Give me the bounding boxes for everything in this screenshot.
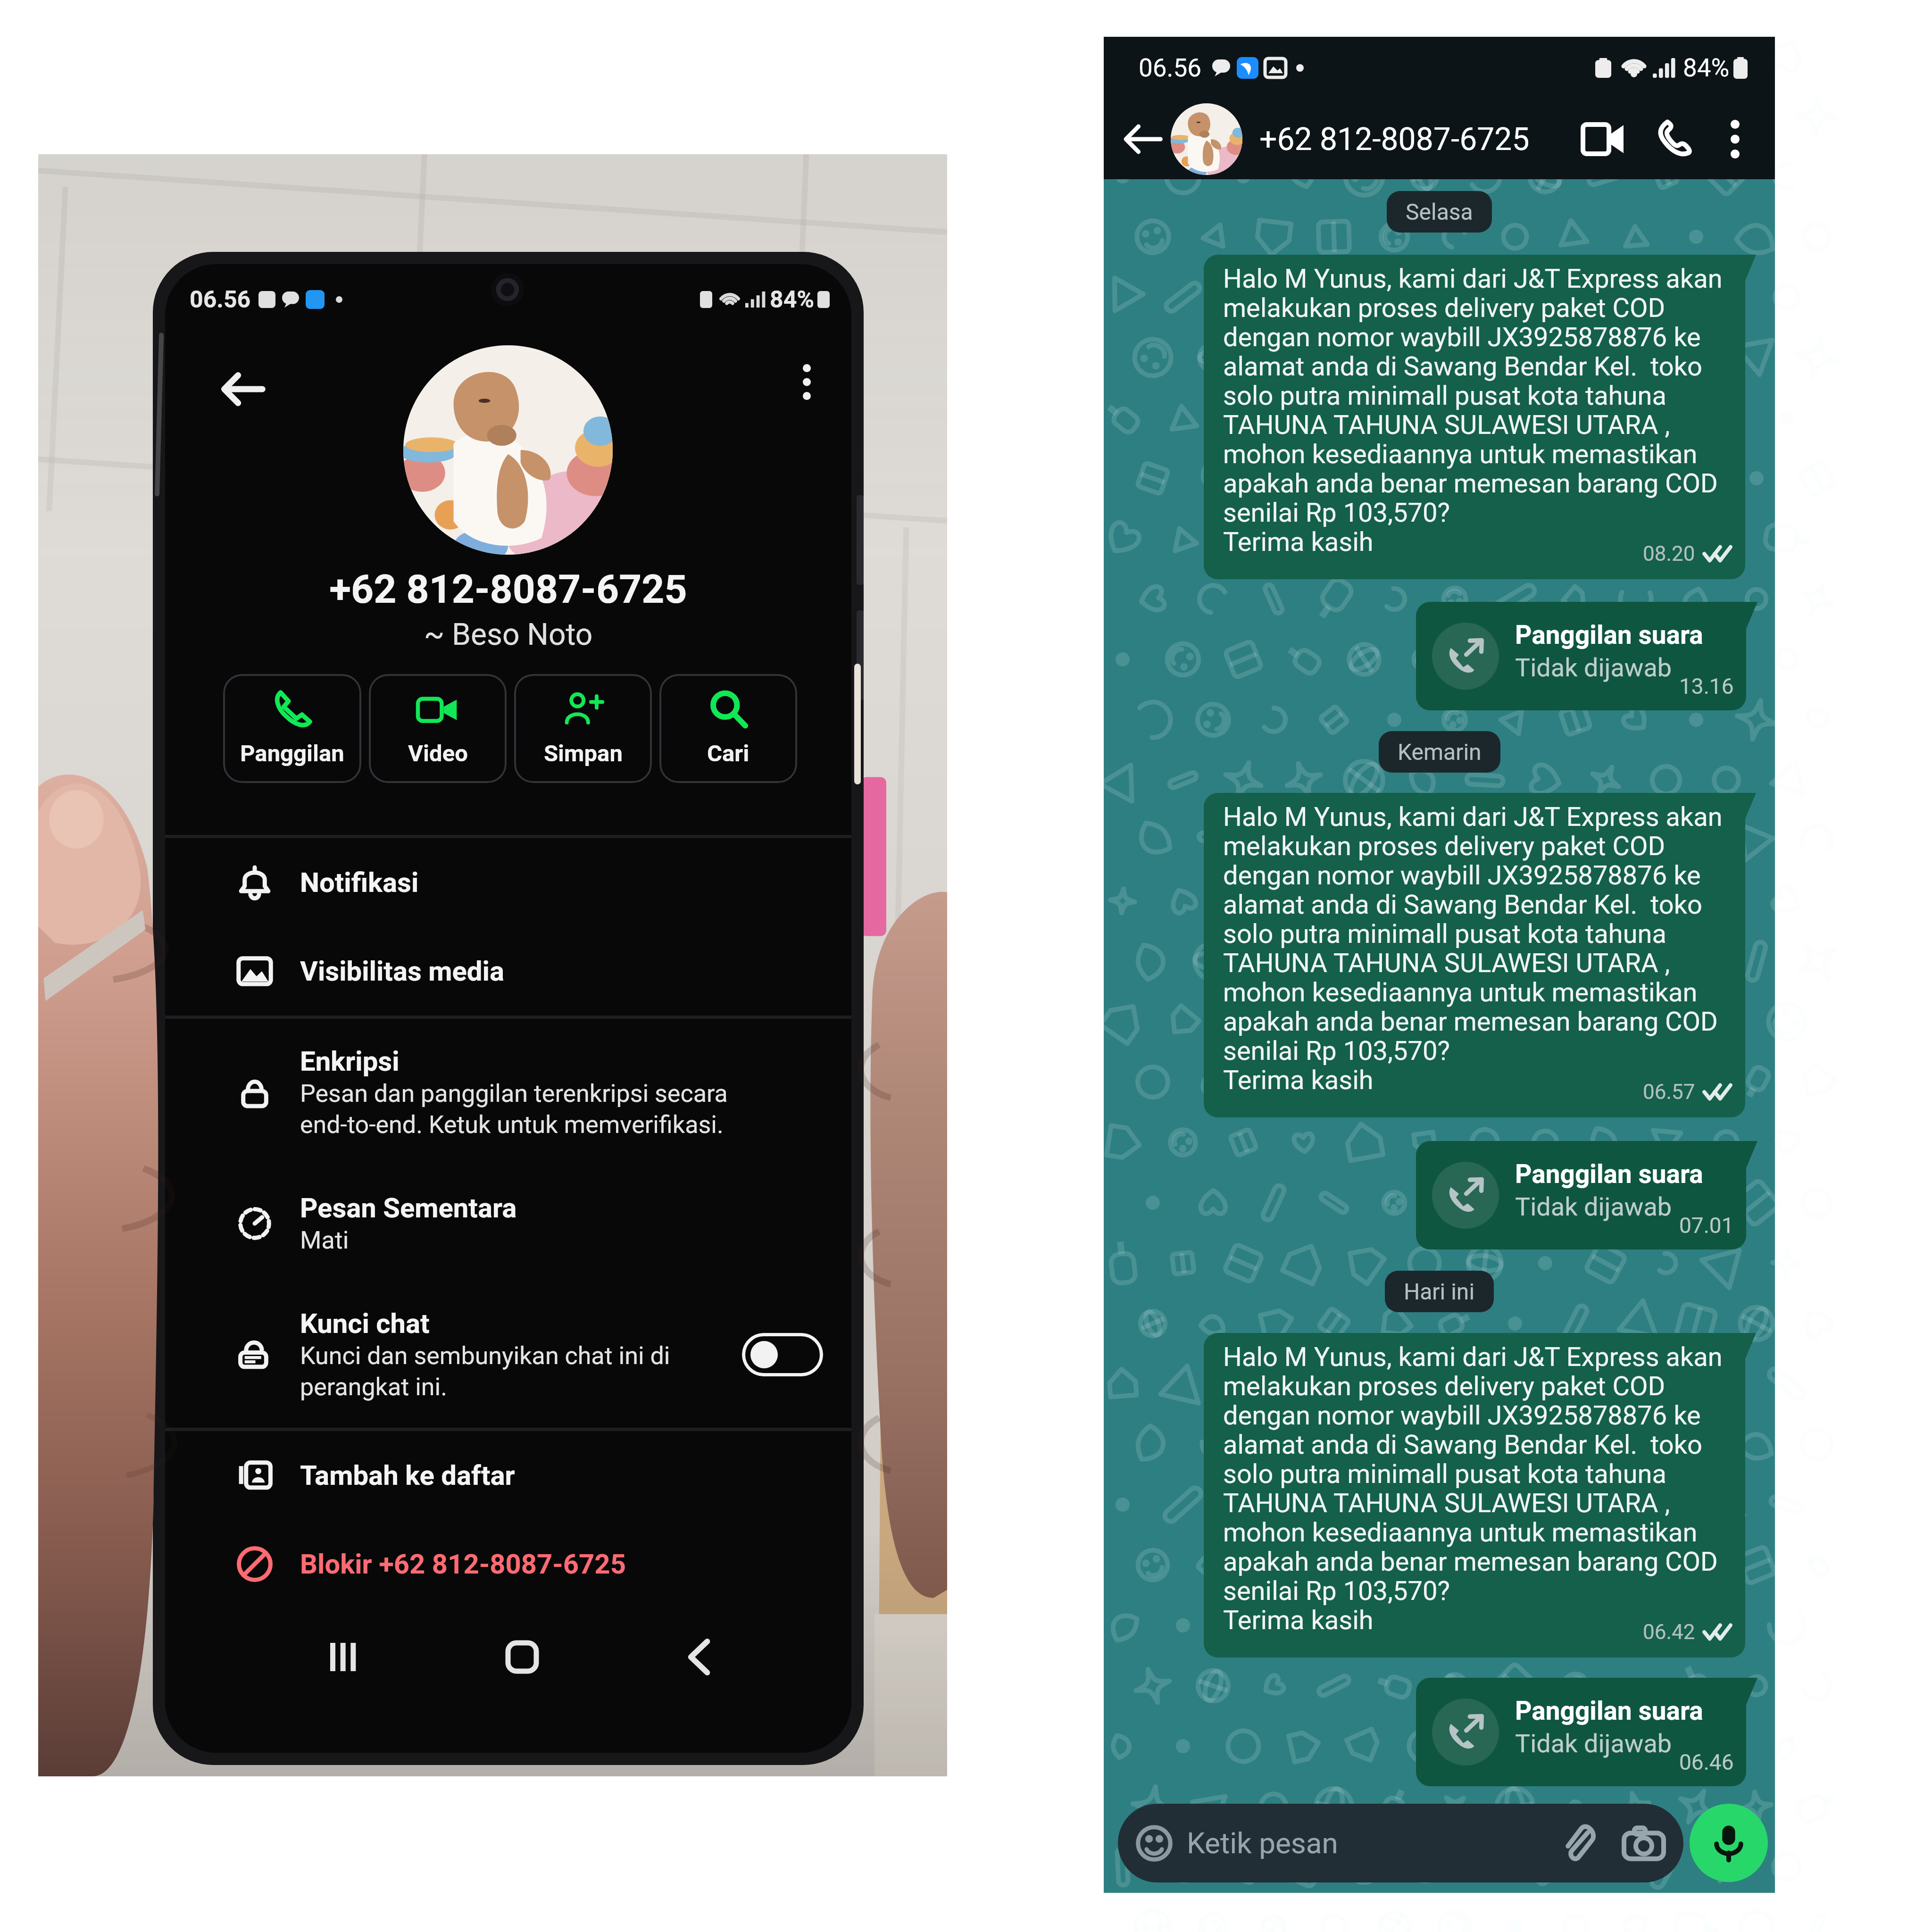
staticText: Video — [408, 740, 468, 767]
button[interactable]: Simpan — [514, 674, 652, 783]
button[interactable]: Back — [1117, 113, 1169, 165]
button[interactable]: Voice call — [1647, 112, 1701, 167]
staticText: Cari — [707, 740, 749, 767]
button[interactable]: Recents — [314, 1629, 371, 1685]
button[interactable]: Panggilan suara — [1416, 602, 1746, 710]
staticText: 84% — [770, 286, 815, 314]
staticText: 13.16 — [1679, 674, 1734, 699]
button[interactable]: Voice message — [1690, 1804, 1768, 1882]
button[interactable]: Halo M Yunus, kami dari J&T Express akan… — [1204, 1333, 1745, 1657]
staticText: Kunci chat — [300, 1307, 430, 1340]
button[interactable]: Back — [671, 1629, 728, 1685]
staticText: Tidak dijawab — [1515, 1729, 1672, 1758]
staticText: Enkripsi — [300, 1045, 400, 1077]
staticText: ~ Beso Noto — [165, 617, 851, 652]
button[interactable]: Blokir +62 812-8087-6725 — [165, 1520, 851, 1608]
button[interactable]: Tambah ke daftar — [165, 1431, 851, 1520]
button[interactable]: Home — [494, 1629, 550, 1685]
button[interactable]: Kunci chat — [165, 1281, 851, 1428]
button[interactable]: More options — [783, 358, 830, 406]
staticText: Pesan dan panggilan terenkripsi secara e… — [300, 1079, 728, 1139]
button[interactable]: Halo M Yunus, kami dari J&T Express akan… — [1204, 255, 1745, 579]
button[interactable]: Panggilan suara — [1416, 1141, 1746, 1249]
button[interactable]: Visibilitas media — [165, 927, 851, 1016]
staticText: +62 812-8087-6725 — [1259, 121, 1530, 158]
staticText: Kemarin — [1398, 739, 1482, 765]
button[interactable]: Attach — [1557, 1822, 1600, 1865]
button[interactable]: More options — [1714, 118, 1756, 160]
staticText: Kunci dan sembunyikan chat ini di perang… — [300, 1341, 670, 1401]
button[interactable]: Panggilan suara — [1416, 1678, 1746, 1786]
staticText: Ketik pesan — [1187, 1826, 1338, 1860]
button[interactable] — [742, 1333, 823, 1376]
staticText: +62 812-8087-6725 — [165, 566, 851, 612]
staticText: Selasa — [1406, 199, 1473, 225]
button[interactable]: Halo M Yunus, kami dari J&T Express akan… — [1204, 793, 1745, 1117]
button[interactable]: Back — [212, 358, 274, 420]
staticText: 06.56 — [190, 286, 251, 314]
staticText: Blokir +62 812-8087-6725 — [300, 1548, 626, 1580]
staticText: Tidak dijawab — [1515, 653, 1672, 683]
staticText: Mati — [300, 1226, 349, 1255]
staticText: Tidak dijawab — [1515, 1192, 1672, 1222]
button[interactable]: Pesan Sementara — [165, 1166, 851, 1281]
button[interactable]: Video call — [1576, 112, 1631, 167]
button[interactable]: Ketik pesan — [1118, 1804, 1683, 1882]
button[interactable]: Video — [369, 674, 507, 783]
staticText: Hari ini — [1404, 1278, 1475, 1305]
staticText: Panggilan — [240, 740, 344, 767]
staticText: 84% — [1683, 53, 1730, 83]
staticText: 07.01 — [1679, 1213, 1734, 1238]
button[interactable]: Cari — [659, 674, 797, 783]
button[interactable]: Panggilan — [223, 674, 361, 783]
staticText: 06.42 — [1643, 1620, 1695, 1644]
staticText: Pesan Sementara — [300, 1192, 517, 1224]
staticText: Visibilitas media — [300, 955, 505, 987]
button[interactable]: Enkripsi — [165, 1019, 851, 1166]
staticText: Halo M Yunus, kami dari J&T Express akan… — [1223, 1341, 1733, 1635]
staticText: Notifikasi — [300, 866, 419, 899]
staticText: Panggilan suara — [1515, 1159, 1703, 1189]
staticText: Halo M Yunus, kami dari J&T Express akan… — [1223, 801, 1733, 1095]
staticText: Tambah ke daftar — [300, 1459, 515, 1491]
button[interactable]: Selasa — [1387, 191, 1492, 233]
staticText: 06.46 — [1679, 1749, 1734, 1775]
staticText: Panggilan suara — [1515, 1696, 1703, 1726]
staticText: Simpan — [544, 740, 623, 767]
button[interactable]: Camera — [1622, 1822, 1666, 1865]
staticText: Halo M Yunus, kami dari J&T Express akan… — [1223, 263, 1733, 557]
button[interactable]: Kemarin — [1379, 731, 1500, 773]
staticText: Panggilan suara — [1515, 620, 1703, 650]
button[interactable] — [1171, 103, 1242, 175]
staticText: 06.57 — [1643, 1080, 1695, 1104]
button[interactable]: Hari ini — [1385, 1271, 1494, 1312]
button[interactable]: Notifikasi — [165, 838, 851, 927]
staticText: 08.20 — [1643, 541, 1695, 566]
staticText: 06.56 — [1139, 53, 1202, 83]
